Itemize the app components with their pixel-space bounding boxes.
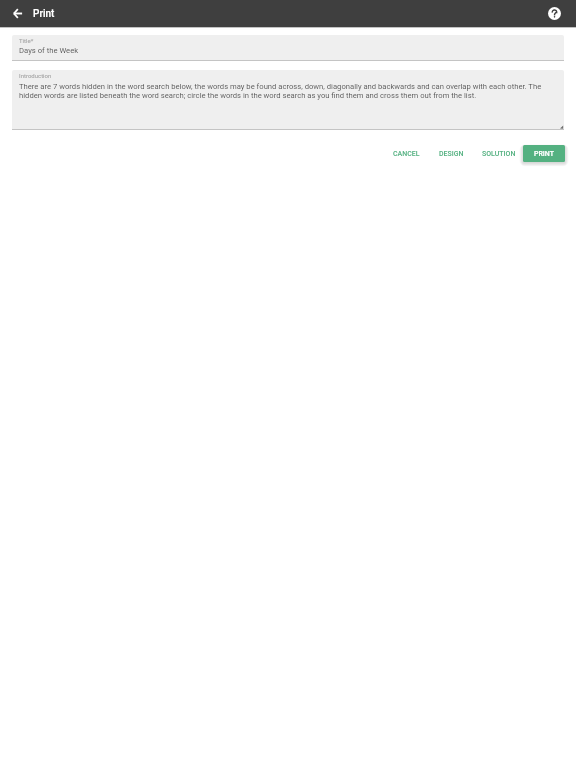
button[interactable]: Title* [12, 35, 564, 61]
button[interactable]: DESIGN [434, 145, 469, 162]
staticText: PRINT [534, 150, 554, 158]
button[interactable]: SOLUTION [477, 145, 521, 162]
staticText: Introduction [19, 72, 52, 79]
button[interactable]: Help [548, 7, 561, 20]
staticText: Print [33, 8, 55, 20]
staticText: DESIGN [439, 150, 464, 158]
staticText: There are 7 words hidden in the word sea… [19, 82, 557, 100]
button[interactable]: CANCEL [388, 145, 425, 162]
button[interactable]: Back [10, 6, 26, 22]
button[interactable]: Introduction [12, 70, 564, 130]
staticText: Title* [19, 37, 34, 44]
staticText: Days of the Week [19, 46, 79, 55]
button[interactable]: PRINT [523, 145, 565, 162]
staticText: SOLUTION [482, 150, 516, 158]
staticText: CANCEL [393, 150, 420, 158]
